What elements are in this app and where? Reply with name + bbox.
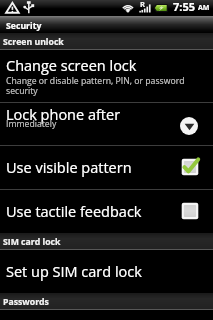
staticText: Security [6, 20, 42, 32]
button[interactable]: Checked checkbox [178, 155, 202, 179]
button[interactable]: Lock phone after options [180, 117, 198, 135]
button[interactable]: Lock phone after [0, 103, 213, 145]
staticText: Change or disable pattern, PIN, or passw… [6, 75, 185, 96]
staticText: Set up SIM card lock [6, 262, 142, 282]
staticText: Use visible pattern [6, 158, 132, 178]
button[interactable]: Use tactile feedback [0, 190, 213, 233]
button[interactable]: Use visible pattern [0, 146, 213, 189]
staticText: 7:55 [173, 0, 196, 14]
staticText: Change screen lock [6, 56, 137, 76]
button[interactable]: Set up SIM card lock [0, 250, 213, 293]
staticText: Lock phone after [6, 105, 121, 125]
button[interactable]: Change screen lock [0, 50, 213, 102]
staticText: AM [198, 3, 210, 13]
staticText: SIM card lock [3, 236, 61, 248]
staticText: Use tactile feedback [6, 202, 142, 222]
staticText: Passwords [3, 296, 49, 308]
staticText: R [140, 0, 145, 9]
staticText: Screen unlock [3, 36, 64, 48]
staticText: Immediately [6, 118, 57, 130]
button[interactable]: Unchecked checkbox [178, 199, 202, 223]
